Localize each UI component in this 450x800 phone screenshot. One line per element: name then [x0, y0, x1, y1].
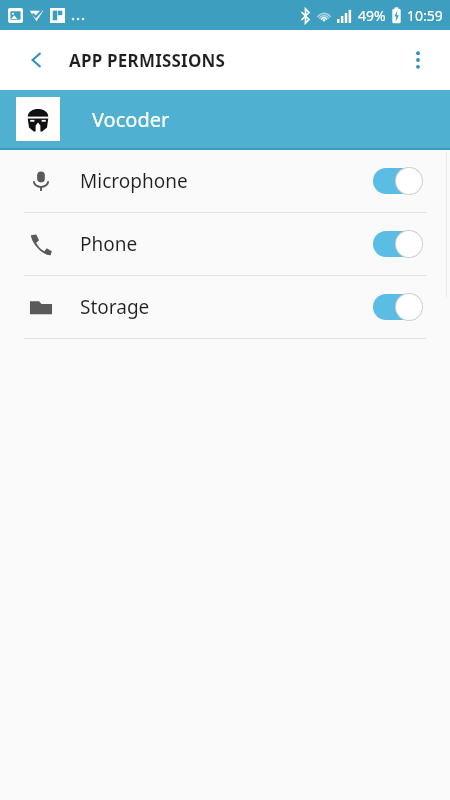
button[interactable]: Toggle permission — [373, 229, 425, 259]
button[interactable]: Toggle permission — [373, 166, 425, 196]
staticText: Storage — [80, 294, 150, 320]
staticText: 10:59 — [407, 6, 443, 25]
button[interactable]: More options — [396, 38, 440, 82]
staticText: Phone — [80, 231, 138, 257]
button[interactable]: Vocoder — [0, 90, 450, 148]
staticText: Microphone — [80, 168, 188, 194]
staticText: APP PERMISSIONS — [69, 49, 226, 72]
button[interactable]: Microphone — [0, 150, 450, 212]
staticText: Vocoder — [92, 106, 170, 133]
button[interactable]: Toggle permission — [373, 292, 425, 322]
staticText: 49% — [358, 6, 386, 25]
button[interactable]: Storage — [0, 276, 450, 338]
button[interactable]: Phone — [0, 213, 450, 275]
button[interactable]: Back — [14, 37, 60, 83]
